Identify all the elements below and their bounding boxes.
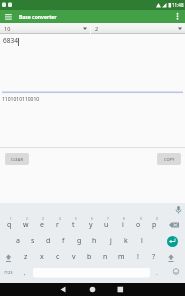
staticText: 11:48 (172, 2, 184, 8)
button[interactable]: g (74, 233, 85, 248)
button[interactable]: f (58, 233, 69, 248)
staticText: CLEAR (11, 157, 23, 162)
button[interactable]: 10 (0, 23, 90, 34)
staticText: ? (152, 252, 156, 262)
staticText: . (156, 269, 158, 277)
staticText: , (24, 269, 26, 277)
button[interactable]: x (36, 249, 47, 264)
staticText: 5 (75, 217, 77, 221)
staticText: i (122, 220, 124, 230)
staticText: h (92, 236, 97, 246)
staticText: s (31, 236, 35, 246)
staticText: g (77, 236, 82, 246)
button[interactable]: u (101, 217, 112, 232)
button[interactable]: o (133, 217, 144, 232)
button[interactable]: n (100, 249, 111, 264)
button[interactable]: Base converter (19, 14, 57, 21)
staticText: 4 (59, 217, 61, 221)
staticText: ! (137, 252, 139, 262)
button[interactable]: s (27, 233, 38, 248)
staticText: COPY (164, 157, 175, 162)
staticText: ?123 (4, 270, 13, 275)
button[interactable]: CLEAR (5, 153, 29, 165)
staticText: 2 (26, 217, 28, 221)
button[interactable]: k (120, 233, 131, 248)
staticText: k (124, 236, 128, 246)
staticText: b (87, 252, 92, 262)
staticText: q (7, 220, 12, 230)
button[interactable]: h (89, 233, 100, 248)
staticText: f (62, 236, 65, 246)
button[interactable]: q (4, 217, 15, 232)
button[interactable]: y (85, 217, 96, 232)
button[interactable]: i (117, 217, 128, 232)
staticText: e (40, 220, 44, 230)
button[interactable]: p (149, 217, 160, 232)
staticText: z (24, 252, 28, 262)
staticText: 1 (10, 217, 12, 221)
button[interactable]: b (84, 249, 95, 264)
staticText: 2 (95, 25, 99, 32)
staticText: x (40, 252, 44, 262)
staticText: 1101010110010 (2, 96, 40, 103)
button[interactable]: 2 (91, 23, 185, 34)
staticText: p (152, 220, 157, 230)
button[interactable]: . (156, 269, 158, 277)
button[interactable]: w (20, 217, 31, 232)
staticText: o (136, 220, 141, 230)
staticText: 3 (42, 217, 44, 221)
staticText: y (89, 220, 93, 230)
staticText: w (23, 220, 29, 230)
staticText: 6 (91, 217, 93, 221)
button[interactable]: a (12, 233, 23, 248)
staticText: 7 (107, 217, 109, 221)
staticText: 6834 (3, 36, 18, 45)
button[interactable]: c (52, 249, 63, 264)
staticText: a (16, 236, 20, 246)
button[interactable]: v (68, 249, 79, 264)
staticText: n (103, 252, 108, 262)
staticText: v (72, 252, 76, 262)
button[interactable]: d (43, 233, 54, 248)
staticText: 8 (123, 217, 125, 221)
staticText: j (110, 236, 112, 246)
staticText: 0 (156, 217, 158, 221)
button[interactable]: r (52, 217, 63, 232)
staticText: u (104, 220, 109, 230)
staticText: d (46, 236, 51, 246)
staticText: m (118, 252, 125, 262)
staticText: Base converter (19, 14, 57, 21)
button[interactable] (85, 283, 101, 296)
button[interactable]: ?123 (4, 270, 13, 275)
button[interactable]: t (68, 217, 79, 232)
staticText: c (56, 252, 60, 262)
button[interactable]: COPY (157, 153, 181, 165)
button[interactable]: l (136, 233, 147, 248)
staticText: r (56, 220, 59, 230)
button[interactable]: ? (148, 249, 159, 264)
button[interactable]: e (36, 217, 47, 232)
button[interactable]: , (24, 269, 26, 277)
button[interactable]: z (20, 249, 31, 264)
staticText: 10 (4, 25, 11, 32)
button[interactable]: m (116, 249, 127, 264)
button[interactable] (112, 283, 128, 296)
button[interactable] (55, 283, 71, 296)
staticText: 9 (140, 217, 142, 221)
staticText: t (72, 220, 75, 230)
staticText: l (141, 236, 143, 246)
button[interactable]: ! (132, 249, 143, 264)
button[interactable]: j (105, 233, 116, 248)
